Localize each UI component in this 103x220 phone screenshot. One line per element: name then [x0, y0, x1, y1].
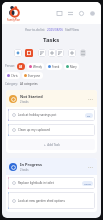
staticText: Your to-do list — [25, 28, 45, 32]
staticText: Frank — [52, 65, 60, 69]
button[interactable]: Replace lightbulb in toilet — [8, 177, 95, 189]
staticText: 2 tasks — [20, 100, 29, 104]
staticText: Everyone — [28, 74, 41, 78]
button[interactable]: Header action — [56, 10, 63, 17]
staticText: Staff View — [65, 28, 79, 32]
staticText: + Add Task — [44, 143, 60, 147]
button[interactable]: FamilyPlan home — [5, 4, 22, 21]
button[interactable]: Frank — [46, 63, 62, 70]
staticText: 2025/08/06 — [47, 28, 63, 32]
staticText: Mary — [70, 65, 77, 69]
button[interactable]: Toolbar action — [25, 49, 33, 57]
staticText: Not Started — [20, 94, 43, 99]
staticText: Tasks — [43, 36, 60, 44]
button[interactable]: Toolbar action — [48, 49, 56, 57]
staticText: Look at new garden shed options — [18, 199, 95, 203]
button[interactable]: Toolbar action — [80, 49, 86, 57]
staticText: 2 tasks — [20, 168, 29, 172]
staticText: FamilyPlan — [7, 18, 20, 21]
staticText: Clean up my cupboard — [18, 128, 95, 132]
staticText: Fin — [87, 114, 91, 117]
button[interactable]: Clean up my cupboard — [8, 124, 95, 136]
staticText: In Progress — [20, 162, 42, 167]
button[interactable]: Chris — [5, 72, 20, 79]
button[interactable]: Look at new garden shed options — [8, 192, 95, 209]
button[interactable]: Header action — [67, 10, 74, 17]
button[interactable]: More options — [86, 95, 94, 103]
staticText: Home — [84, 182, 91, 185]
button[interactable]: + Add Task — [8, 139, 95, 150]
button[interactable]: All — [17, 63, 25, 70]
button[interactable]: Toolbar action — [38, 49, 46, 57]
button[interactable]: More options — [86, 163, 94, 171]
staticText: Look at holiday savings pot — [18, 113, 85, 117]
button[interactable]: Header action — [78, 10, 85, 17]
button[interactable]: Toolbar action — [14, 49, 22, 57]
button[interactable]: Everyone — [22, 72, 43, 79]
button[interactable]: Header action — [89, 10, 96, 17]
staticText: All — [19, 65, 23, 69]
button[interactable]: Toolbar action — [56, 49, 64, 57]
staticText: Chris — [11, 74, 18, 78]
staticText: Category: — [5, 82, 18, 86]
staticText: All categories — [20, 82, 38, 86]
staticText: Wendy — [33, 65, 42, 69]
button[interactable]: Wendy — [27, 63, 44, 70]
staticText: Person: — [5, 64, 15, 68]
button[interactable]: Toolbar action — [68, 49, 76, 57]
staticText: Replace lightbulb in toilet — [18, 181, 82, 185]
button[interactable]: Mary — [64, 63, 79, 70]
button[interactable]: Look at holiday savings pot — [8, 109, 95, 121]
